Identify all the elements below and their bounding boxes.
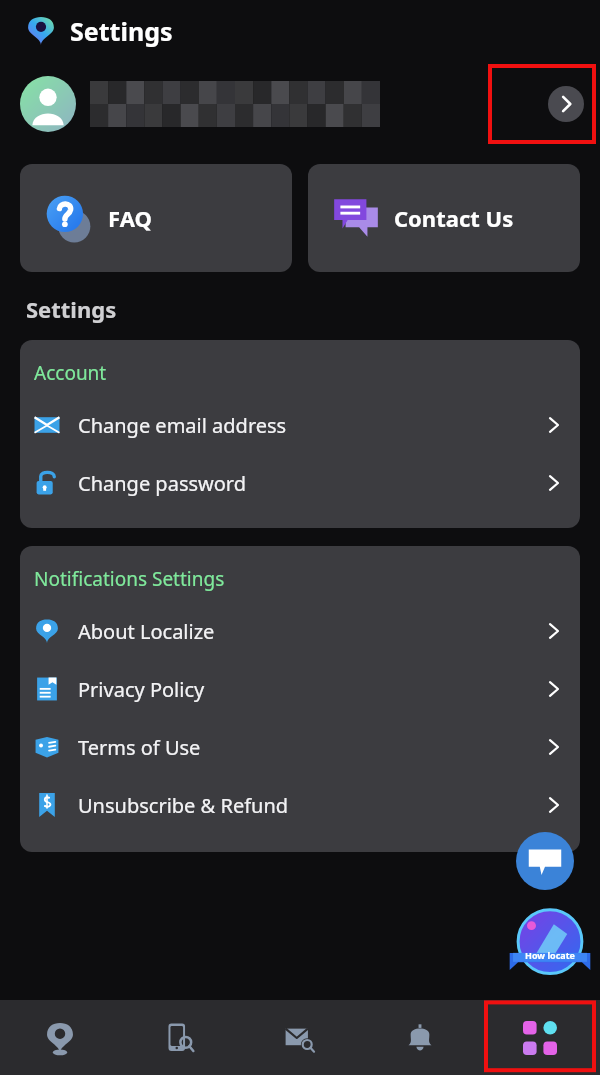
button[interactable]: Contact Us <box>308 164 580 272</box>
staticText: Change email address <box>78 412 287 439</box>
button[interactable]: More <box>480 1000 600 1075</box>
button[interactable]: How locate <box>508 908 592 974</box>
staticText: Account <box>34 360 107 386</box>
staticText: Terms of Use <box>78 734 201 761</box>
staticText: Change password <box>78 470 247 497</box>
button[interactable]: Change password <box>20 454 580 512</box>
button[interactable]: About Localize <box>20 602 580 660</box>
staticText: FAQ <box>108 203 152 233</box>
staticText: Unsubscribe & Refund <box>78 792 289 819</box>
staticText: Notifications Settings <box>34 566 225 592</box>
button[interactable]: Chat support <box>516 832 574 890</box>
button[interactable]: Change email address <box>20 396 580 454</box>
staticText: How locate <box>525 949 575 961</box>
button[interactable]: Terms of Use <box>20 718 580 776</box>
button[interactable]: FAQ <box>20 164 292 272</box>
button[interactable]: Notifications <box>360 1000 480 1075</box>
staticText: About Localize <box>78 618 215 645</box>
button[interactable]: Privacy Policy <box>20 660 580 718</box>
staticText: Privacy Policy <box>78 676 205 703</box>
button[interactable]: Mail search <box>240 1000 360 1075</box>
button[interactable]: Device search <box>120 1000 240 1075</box>
staticText: Settings <box>70 14 173 48</box>
staticText: Contact Us <box>394 203 514 233</box>
button[interactable]: Unsubscribe & Refund <box>20 776 580 834</box>
button[interactable]: Map <box>0 1000 120 1075</box>
button[interactable]: Account details <box>490 66 594 142</box>
staticText: Settings <box>26 294 117 324</box>
